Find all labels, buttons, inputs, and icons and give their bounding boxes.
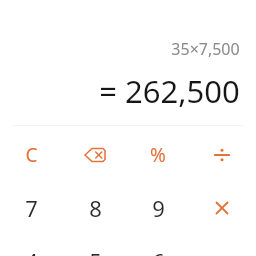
button[interactable]: 9: [128, 183, 188, 233]
staticText: 6: [152, 246, 165, 256]
button[interactable]: Divide: [192, 130, 252, 180]
button[interactable]: 7: [1, 183, 61, 233]
staticText: 9: [152, 193, 165, 223]
staticText: 8: [89, 193, 102, 223]
button[interactable]: %: [128, 130, 188, 180]
button[interactable]: 8: [65, 183, 125, 233]
button[interactable]: C: [1, 130, 61, 180]
staticText: 35×7,500: [171, 38, 240, 60]
button[interactable]: 6: [128, 236, 188, 256]
staticText: 7: [25, 193, 38, 223]
staticText: 4: [25, 246, 38, 256]
button[interactable]: Multiply: [192, 183, 252, 233]
staticText: 5: [89, 246, 102, 256]
button[interactable]: 5: [65, 236, 125, 256]
staticText: C: [25, 142, 38, 168]
button[interactable]: Backspace: [65, 130, 125, 180]
staticText: %: [150, 142, 166, 168]
staticText: = 262,500: [99, 70, 240, 112]
button[interactable]: 4: [1, 236, 61, 256]
button[interactable]: 35×7,500: [0, 0, 256, 126]
